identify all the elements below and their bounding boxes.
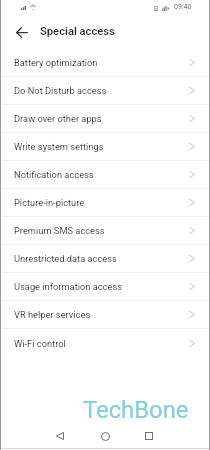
button[interactable]: Write system settings: [0, 133, 210, 161]
staticText: Picture-in-picture: [14, 197, 85, 208]
staticText: Usage information access: [14, 281, 122, 292]
button[interactable]: Usage information access: [0, 273, 210, 301]
button[interactable]: Notification access: [0, 161, 210, 189]
staticText: TechBone: [83, 396, 189, 424]
staticText: Battery optimization: [14, 57, 98, 68]
staticText: Special access: [40, 25, 115, 38]
button[interactable]: Premium SMS access: [0, 217, 210, 245]
staticText: Unrestricted data access: [14, 253, 117, 264]
button[interactable]: Home: [93, 424, 117, 448]
button[interactable]: Wi-Fi control: [0, 329, 210, 357]
staticText: Premium SMS access: [14, 225, 105, 236]
button[interactable]: Recents: [137, 424, 161, 448]
button[interactable]: Back: [48, 424, 72, 448]
staticText: Write system settings: [14, 141, 104, 152]
button[interactable]: VR helper services: [0, 301, 210, 329]
button[interactable]: Unrestricted data access: [0, 245, 210, 273]
staticText: Notification access: [14, 169, 94, 180]
button[interactable]: Do Not Disturb access: [0, 77, 210, 105]
button[interactable]: Draw over other apps: [0, 105, 210, 133]
button[interactable]: Back: [10, 20, 34, 44]
button[interactable]: Picture-in-picture: [0, 189, 210, 217]
button[interactable]: Battery optimization: [0, 49, 210, 77]
staticText: Draw over other apps: [14, 113, 102, 124]
staticText: 09:40: [174, 3, 192, 11]
staticText: Do Not Disturb access: [14, 85, 107, 96]
staticText: Wi-Fi control: [14, 338, 66, 349]
staticText: VR helper services: [14, 309, 91, 320]
